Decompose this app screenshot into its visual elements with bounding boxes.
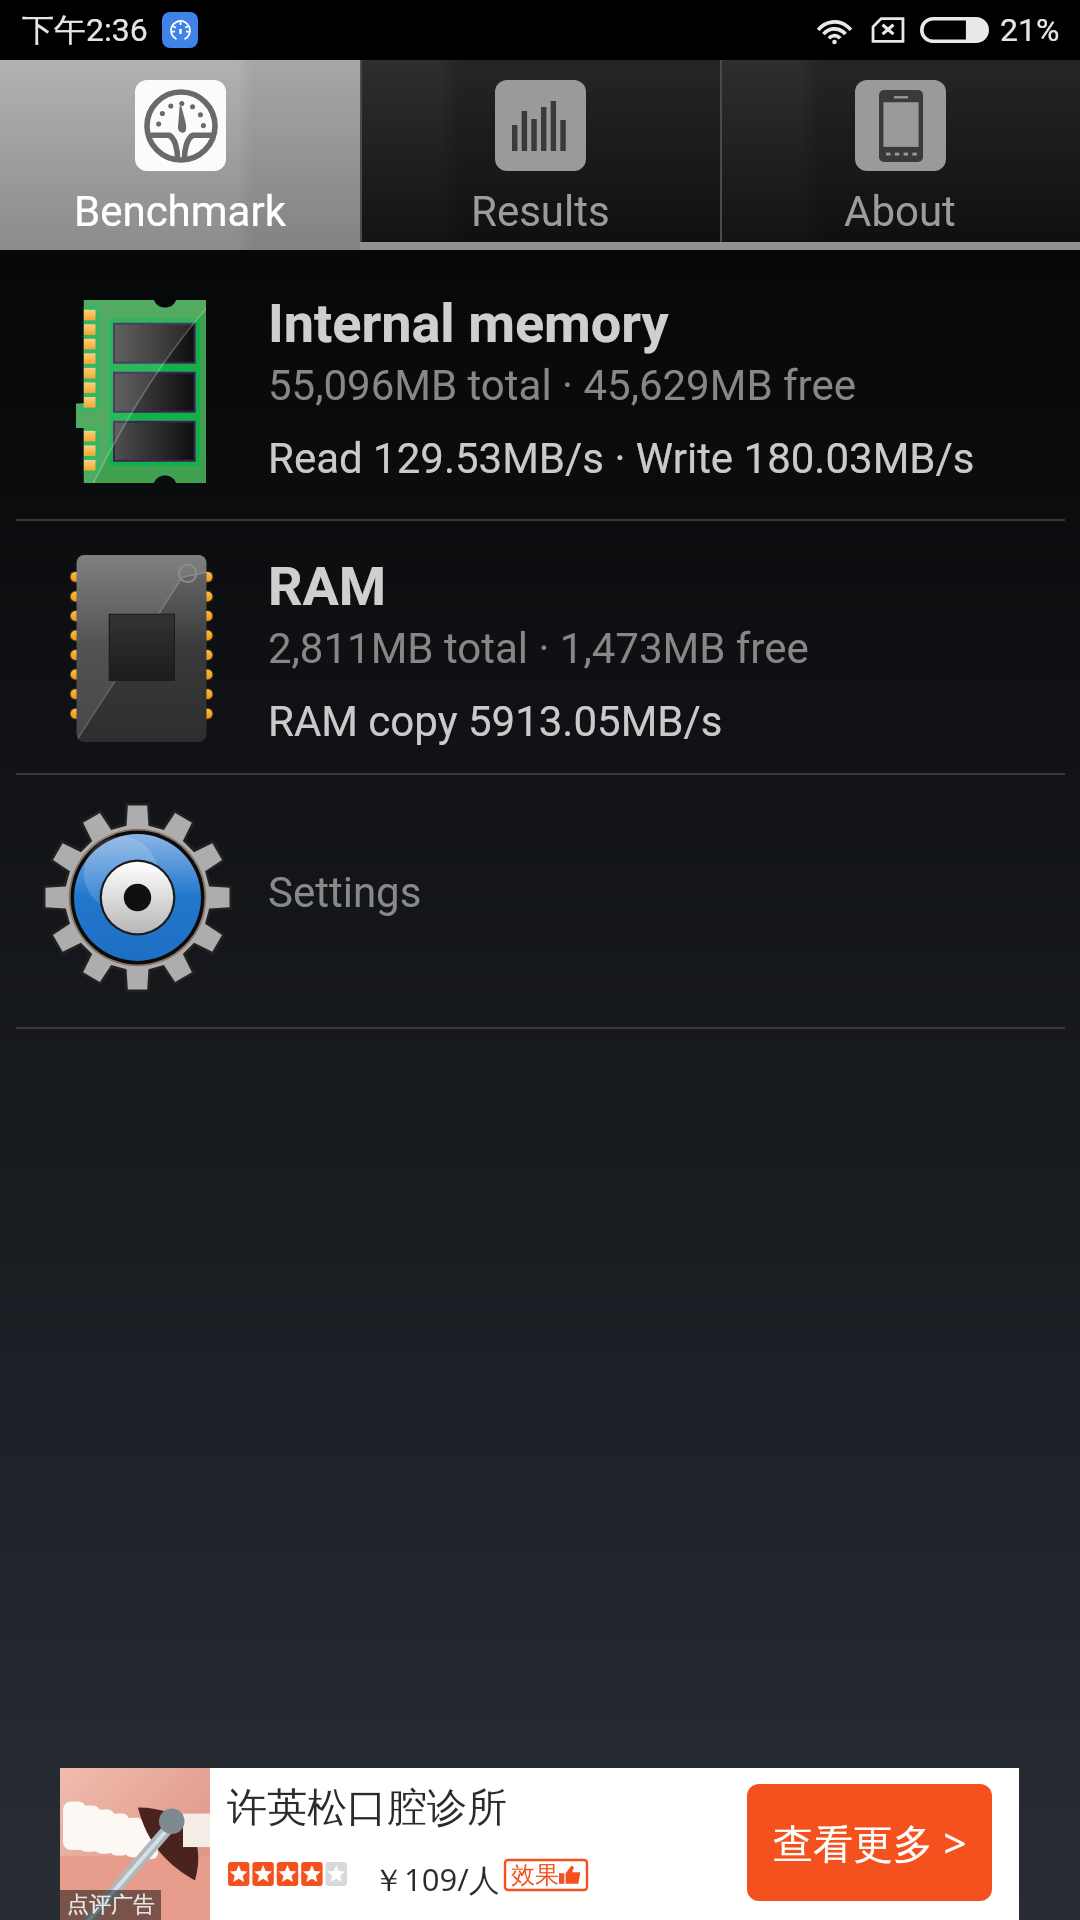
staticText: 许英松口腔诊所	[227, 1782, 507, 1832]
staticText: Results	[471, 187, 610, 236]
button[interactable]: Results	[360, 60, 720, 250]
button[interactable]: Benchmark	[0, 60, 360, 250]
button[interactable]: Settings	[0, 775, 1080, 1027]
button[interactable]: 查看更多 >	[747, 1784, 992, 1901]
staticText: 查看更多 >	[773, 1815, 967, 1870]
button[interactable]: Internal memory	[0, 250, 1080, 519]
staticText: Benchmark	[74, 187, 286, 236]
staticText: Internal memory	[268, 292, 669, 355]
staticText: RAM	[268, 555, 387, 618]
staticText: 21%	[1000, 11, 1060, 49]
staticText: RAM copy 5913.05MB/s	[268, 697, 723, 746]
button[interactable]: About	[720, 60, 1080, 250]
button[interactable]: 点评广告	[60, 1768, 1019, 1920]
staticText: 效果	[511, 1860, 559, 1890]
staticText: 2,811MB total · 1,473MB free	[268, 624, 809, 673]
staticText: Settings	[268, 868, 422, 917]
staticText: 点评广告	[67, 1891, 155, 1919]
staticText: Read 129.53MB/s · Write 180.03MB/s	[268, 434, 975, 483]
staticText: 下午2:36	[22, 10, 148, 50]
staticText: ￥109/人	[373, 1858, 500, 1900]
button[interactable]: RAM	[0, 521, 1080, 773]
staticText: About	[844, 187, 956, 236]
staticText: 55,096MB total · 45,629MB free	[268, 361, 856, 410]
